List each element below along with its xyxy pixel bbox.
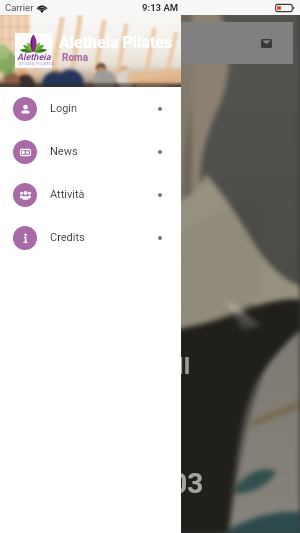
button[interactable]: News — [0, 130, 181, 173]
button[interactable]: Credits — [0, 216, 181, 259]
button[interactable]: Messages — [255, 32, 277, 54]
staticText: 06.03 — [131, 467, 204, 500]
staticText: Aletheia — [17, 52, 51, 63]
staticText: Credits — [50, 231, 85, 244]
staticText: Carrier — [5, 2, 34, 13]
button[interactable]: Login — [0, 87, 181, 130]
staticText: News — [50, 145, 78, 158]
staticText: Roma — [62, 52, 89, 64]
button[interactable]: Attività — [0, 173, 181, 216]
staticText: 9:13 AM — [142, 2, 179, 13]
staticText: LEZIONI — [102, 352, 191, 380]
staticText: Attività — [50, 188, 85, 201]
staticText: Login — [50, 102, 78, 115]
staticText: STUDIO PILATES — [19, 62, 55, 66]
staticText: Aletheia Pilates — [59, 33, 173, 52]
